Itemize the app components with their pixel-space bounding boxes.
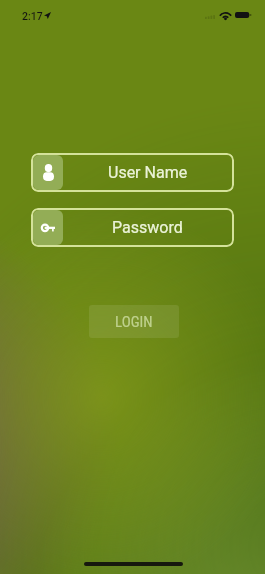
staticText: 2:17 [22, 10, 43, 22]
button[interactable]: Password [31, 208, 234, 247]
staticText: LOGIN [115, 313, 153, 331]
button[interactable]: LOGIN [89, 305, 179, 338]
staticText: Password [112, 218, 183, 237]
button[interactable]: User Name [31, 153, 234, 192]
staticText: User Name [108, 163, 188, 182]
